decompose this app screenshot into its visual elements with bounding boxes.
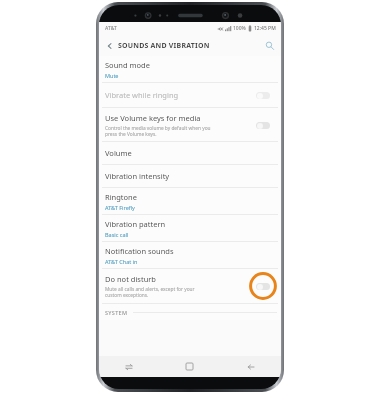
- staticText: Notification sounds: [105, 246, 174, 256]
- button[interactable]: Volume: [99, 142, 281, 164]
- staticText: SYSTEM: [105, 309, 128, 316]
- staticText: Basic call: [105, 231, 129, 238]
- staticText: Mute all calls and alerts, except for yo…: [105, 286, 195, 298]
- staticText: Sound mode: [105, 60, 150, 70]
- staticText: Control the media volume by default when…: [105, 125, 211, 137]
- button[interactable]: Notification sounds: [99, 242, 281, 268]
- button[interactable]: Vibration intensity: [99, 165, 281, 187]
- staticText: Use Volume keys for media: [105, 113, 201, 123]
- button[interactable]: Vibration pattern: [99, 215, 281, 241]
- staticText: Volume: [105, 148, 132, 158]
- button[interactable]: [256, 92, 270, 99]
- other: Vibrate while ringing: [249, 83, 277, 107]
- button[interactable]: Sound mode: [99, 56, 281, 82]
- button[interactable]: Home: [159, 356, 220, 377]
- staticText: AT&T Chat in: [105, 258, 138, 265]
- button[interactable]: Recents: [99, 356, 159, 377]
- other: Use Volume keys for media: [249, 111, 277, 139]
- staticText: Vibrate while ringing: [105, 90, 179, 100]
- other: Do not disturb: [249, 272, 277, 300]
- staticText: 12:45 PM: [254, 25, 276, 32]
- button[interactable]: Ringtone: [99, 188, 281, 214]
- staticText: AT&T Firefly: [105, 204, 135, 211]
- button[interactable]: Vibrate while ringing: [99, 83, 281, 107]
- button[interactable]: Back: [103, 39, 117, 53]
- staticText: SOUNDS AND VIBRATION: [118, 41, 210, 51]
- button[interactable]: Use Volume keys for media: [99, 108, 281, 141]
- button[interactable]: [256, 122, 270, 129]
- button[interactable]: Back: [220, 356, 281, 377]
- staticText: 100%: [233, 25, 246, 32]
- staticText: Vibration pattern: [105, 219, 166, 229]
- button[interactable]: [256, 283, 270, 290]
- staticText: Vibration intensity: [105, 171, 170, 181]
- button[interactable]: Search: [262, 38, 277, 53]
- staticText: AT&T: [105, 25, 117, 32]
- staticText: Mute: [105, 72, 119, 79]
- staticText: Ringtone: [105, 192, 137, 202]
- staticText: Do not disturb: [105, 274, 156, 284]
- button[interactable]: Do not disturb: [99, 269, 281, 303]
